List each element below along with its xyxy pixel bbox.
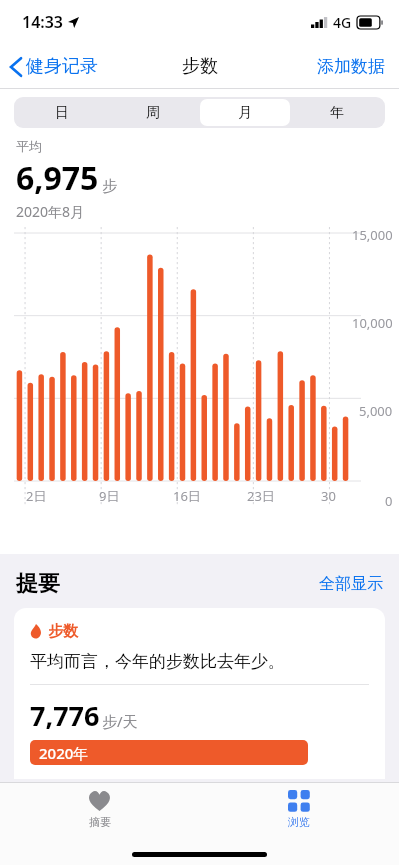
staticText: 浏览 xyxy=(288,815,310,829)
staticText: 平均 xyxy=(16,138,42,154)
staticText: 23日 xyxy=(247,487,275,505)
button[interactable]: 健身记录 xyxy=(0,51,106,82)
staticText: 月 xyxy=(238,104,252,122)
staticText: 10,000 xyxy=(352,314,393,332)
staticText: 健身记录 xyxy=(26,55,98,78)
staticText: 步/天 xyxy=(102,711,138,731)
button[interactable]: 月 xyxy=(200,99,290,126)
staticText: 平均而言，今年的步数比去年少。 xyxy=(30,651,285,672)
staticText: 4G xyxy=(333,13,352,32)
button[interactable]: 全部显示 xyxy=(319,574,383,594)
button[interactable]: 摘要 xyxy=(0,783,199,833)
staticText: 日 xyxy=(55,104,69,122)
staticText: 9日 xyxy=(99,487,120,505)
button[interactable]: 添加数据 xyxy=(303,50,399,83)
staticText: 7,776 xyxy=(30,697,100,734)
staticText: 2020年 xyxy=(39,743,89,763)
button[interactable]: 年 xyxy=(292,99,382,126)
staticText: 15,000 xyxy=(352,226,393,244)
staticText: 30 xyxy=(321,487,336,505)
staticText: 步数 xyxy=(182,55,218,78)
button[interactable]: 周 xyxy=(108,99,198,126)
staticText: 步 xyxy=(102,177,117,196)
button[interactable]: 浏览 xyxy=(199,783,399,833)
staticText: 0 xyxy=(385,492,393,510)
staticText: 5,000 xyxy=(359,402,393,420)
staticText: 周 xyxy=(146,104,160,122)
staticText: 6,975 xyxy=(16,156,99,200)
staticText: 摘要 xyxy=(89,815,111,829)
staticText: 提要 xyxy=(16,570,60,598)
staticText: 16日 xyxy=(173,487,201,505)
staticText: 步数 xyxy=(48,622,78,641)
staticText: 2020年8月 xyxy=(16,202,85,221)
button[interactable]: 日 xyxy=(17,99,106,126)
staticText: 年 xyxy=(330,104,344,122)
button[interactable]: 步数 xyxy=(14,608,385,779)
staticText: 14:33 xyxy=(22,11,64,33)
staticText: 2日 xyxy=(26,487,47,505)
